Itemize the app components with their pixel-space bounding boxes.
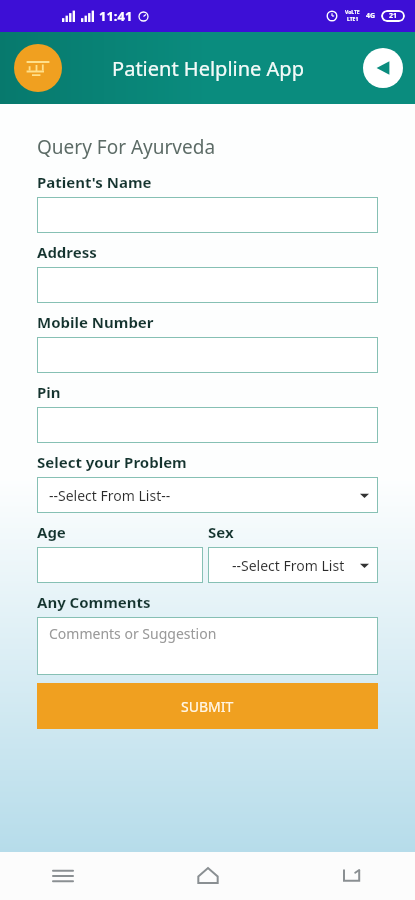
button[interactable]: SUBMIT (37, 683, 378, 729)
staticText: Query For Ayurveda (37, 134, 216, 160)
staticText: Patient Helpline App (112, 55, 304, 82)
staticText: --Select From List (232, 556, 345, 575)
staticText: Pin (37, 382, 61, 402)
staticText: Comments or Suggestion (49, 624, 217, 643)
button[interactable]: Back (363, 48, 403, 88)
button[interactable]: App logo (14, 44, 62, 92)
staticText: 11:41 (99, 7, 133, 25)
button[interactable] (37, 407, 378, 443)
staticText: Address (37, 242, 97, 262)
staticText: Age (37, 522, 66, 542)
staticText: --Select From List-- (49, 486, 171, 505)
staticText: SUBMIT (181, 697, 234, 716)
button[interactable] (37, 337, 378, 373)
button[interactable]: Comments or Suggestion (37, 617, 378, 675)
button[interactable] (37, 547, 203, 583)
staticText: 21 (389, 11, 398, 21)
staticText: Any Comments (37, 592, 151, 612)
button[interactable]: --Select From List (208, 547, 378, 583)
button[interactable]: Home (185, 853, 231, 899)
button[interactable] (37, 197, 378, 233)
staticText: Mobile Number (37, 312, 154, 332)
staticText: LTE1 (347, 16, 359, 23)
button[interactable]: Back (329, 853, 375, 899)
staticText: VoLTE (345, 9, 360, 16)
staticText: 4G (366, 11, 376, 21)
staticText: Sex (208, 522, 234, 542)
staticText: Patient's Name (37, 172, 152, 192)
button[interactable] (37, 267, 378, 303)
button[interactable]: --Select From List-- (37, 477, 378, 513)
button[interactable]: Recents (40, 853, 86, 899)
staticText: Select your Problem (37, 452, 187, 472)
